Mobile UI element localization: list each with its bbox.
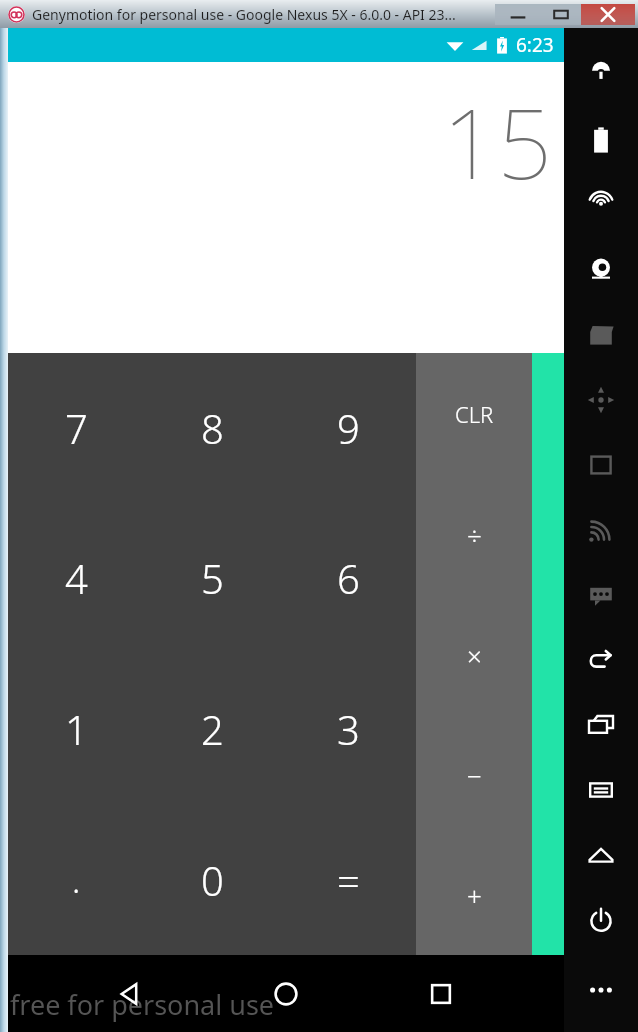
button[interactable]: Home — [254, 962, 318, 1026]
staticText: CLR — [455, 399, 494, 429]
button[interactable]: 1 — [8, 653, 144, 804]
button[interactable]: Network — [564, 497, 638, 562]
staticText: 9 — [337, 401, 360, 455]
staticText: 1 — [65, 702, 88, 756]
button[interactable]: 3 — [280, 653, 416, 804]
staticText: ÷ — [467, 517, 482, 552]
staticText: 15 — [442, 76, 552, 207]
button[interactable]: Window button — [581, 4, 635, 25]
button[interactable]: − — [416, 715, 532, 835]
button[interactable]: Power — [564, 887, 638, 952]
button[interactable]: Home — [564, 822, 638, 887]
button[interactable]: 4 — [8, 503, 144, 653]
button[interactable]: Menu — [564, 757, 638, 822]
button[interactable]: Back — [564, 627, 638, 692]
button[interactable]: Messaging — [564, 562, 638, 627]
staticText: + — [467, 878, 482, 913]
staticText: Genymotion for personal use - Google Nex… — [32, 5, 456, 24]
button[interactable]: 2 — [144, 653, 280, 804]
staticText: 0 — [201, 853, 224, 907]
button[interactable]: GAPPS — [564, 42, 638, 107]
staticText: = — [337, 853, 360, 907]
button[interactable]: GPS — [564, 172, 638, 237]
staticText: − — [467, 758, 482, 793]
staticText: 3 — [337, 702, 360, 756]
staticText: × — [467, 638, 482, 673]
button[interactable]: + — [416, 835, 532, 955]
button[interactable]: ÷ — [416, 474, 532, 595]
button[interactable]: Rotate — [564, 692, 638, 757]
staticText: . — [72, 857, 81, 903]
button[interactable]: Recents — [409, 962, 473, 1026]
button[interactable]: 5 — [144, 503, 280, 653]
staticText: 6 — [337, 551, 360, 605]
staticText: 2 — [201, 702, 224, 756]
button[interactable]: = — [280, 804, 416, 955]
button[interactable]: Battery — [564, 107, 638, 172]
button[interactable]: Identifiers — [564, 432, 638, 497]
button[interactable]: Window button — [495, 4, 541, 25]
button[interactable]: CLR — [416, 353, 532, 474]
staticText: 4 — [65, 551, 88, 605]
staticText: free for personal use — [10, 986, 275, 1023]
button[interactable]: 0 — [144, 804, 280, 955]
button[interactable]: 6 — [280, 503, 416, 653]
button[interactable]: Camera — [564, 237, 638, 302]
button[interactable]: 8 — [144, 353, 280, 503]
button[interactable]: Video — [564, 302, 638, 367]
staticText: 8 — [201, 401, 224, 455]
button[interactable]: D-pad — [564, 367, 638, 432]
button[interactable]: . — [8, 804, 144, 955]
button[interactable]: Window button — [541, 4, 581, 25]
button[interactable]: × — [416, 595, 532, 715]
staticText: 5 — [201, 551, 224, 605]
button[interactable]: Back — [99, 962, 163, 1026]
button[interactable]: 7 — [8, 353, 144, 503]
staticText: 6:23 — [516, 32, 554, 58]
staticText: 7 — [65, 401, 88, 455]
button[interactable]: More — [564, 957, 638, 1022]
button[interactable]: 9 — [280, 353, 416, 503]
